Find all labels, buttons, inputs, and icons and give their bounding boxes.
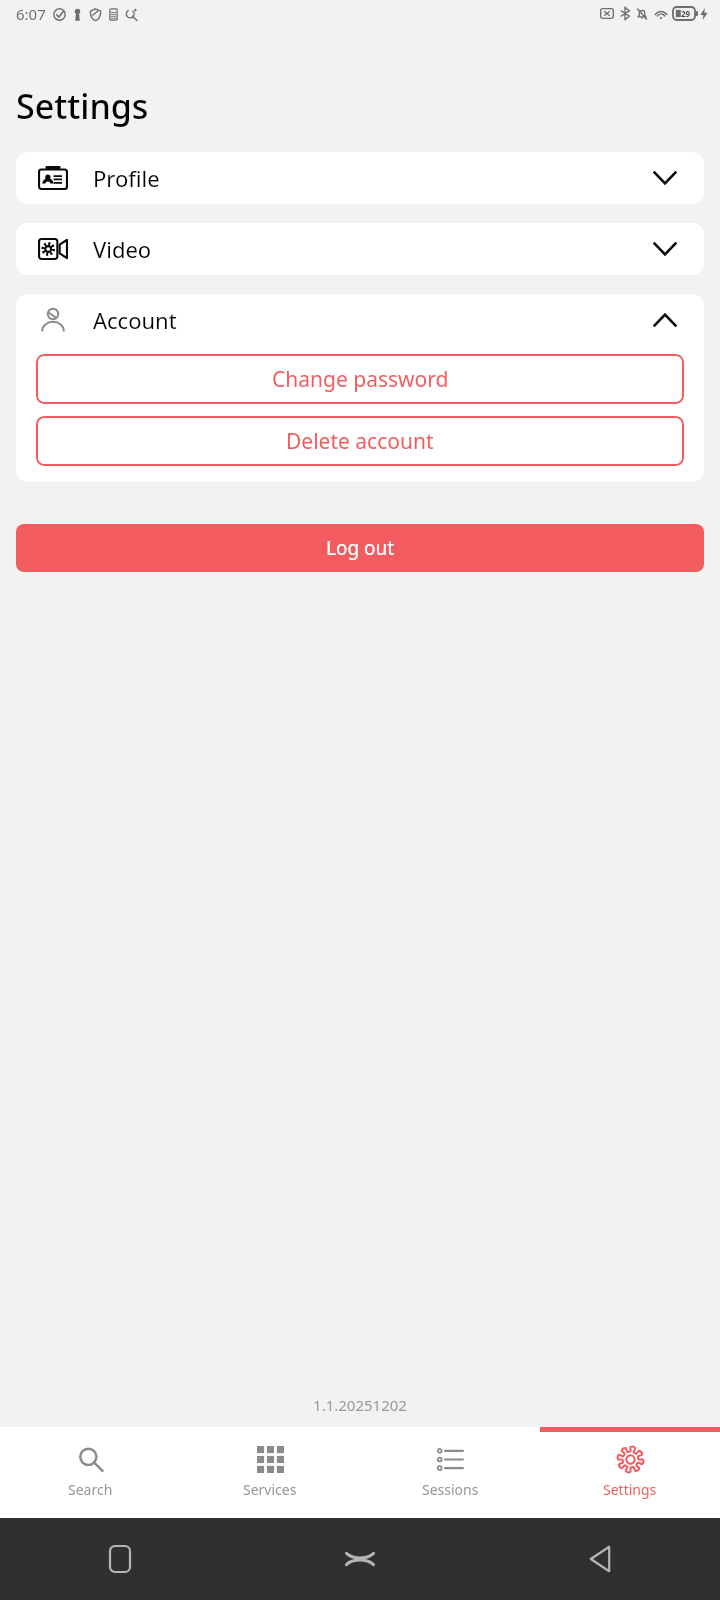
- staticText: Sessions: [422, 1480, 479, 1499]
- button[interactable]: Sessions: [360, 1427, 540, 1518]
- staticText: 1.1.20251202: [0, 1395, 720, 1415]
- button[interactable]: Profile: [16, 152, 704, 204]
- staticText: 29: [681, 8, 691, 19]
- button[interactable]: Settings: [540, 1427, 720, 1518]
- staticText: Settings: [603, 1480, 657, 1499]
- staticText: Search: [68, 1480, 113, 1499]
- staticText: Settings: [16, 83, 149, 129]
- button[interactable]: Change password: [36, 354, 684, 404]
- button[interactable]: Back: [480, 1518, 720, 1600]
- button[interactable]: Video: [16, 223, 704, 275]
- button[interactable]: Services: [180, 1427, 360, 1518]
- button[interactable]: Delete account: [36, 416, 684, 466]
- staticText: Delete account: [286, 427, 434, 456]
- staticText: Services: [243, 1480, 297, 1499]
- staticText: Video: [93, 234, 152, 264]
- staticText: 6:07: [16, 4, 46, 24]
- staticText: Account: [93, 305, 177, 335]
- button[interactable]: Recent apps: [240, 1518, 480, 1600]
- button[interactable]: Log out: [16, 524, 704, 572]
- staticText: Change password: [272, 365, 449, 394]
- button[interactable]: Search: [0, 1427, 180, 1518]
- button[interactable]: Home: [0, 1518, 240, 1600]
- staticText: Log out: [326, 535, 395, 561]
- button[interactable]: Account: [16, 294, 704, 346]
- staticText: Profile: [93, 163, 160, 193]
